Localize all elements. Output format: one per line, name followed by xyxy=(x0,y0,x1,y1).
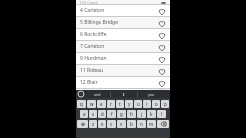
staticText: you xyxy=(148,92,155,97)
button[interactable]: l xyxy=(157,110,166,118)
staticText: 150 Capit xyxy=(79,0,98,5)
button[interactable]: Favourite 12 Blair xyxy=(157,79,166,87)
button[interactable]: d xyxy=(98,110,106,118)
button[interactable]: Favourite 5 Billings Bridge xyxy=(157,19,166,27)
button[interactable]: Shift xyxy=(77,120,88,128)
staticText: d xyxy=(101,111,104,117)
staticText: and xyxy=(94,92,101,97)
button[interactable]: 7 Carleton xyxy=(76,41,170,52)
staticText: y xyxy=(128,101,131,107)
staticText: k xyxy=(150,111,153,117)
staticText: f xyxy=(111,111,113,117)
staticText: c xyxy=(110,121,113,127)
button[interactable]: v xyxy=(117,120,126,128)
button[interactable]: 12 Blair xyxy=(76,77,170,88)
staticText: 9 Hurdman xyxy=(80,55,107,62)
button[interactable]: 4 Carleton xyxy=(76,5,170,16)
staticText: o xyxy=(155,101,158,107)
button[interactable]: p xyxy=(161,100,169,108)
staticText: w xyxy=(90,101,94,107)
staticText: m xyxy=(149,121,154,127)
staticText: u xyxy=(137,101,140,107)
button[interactable]: 6 Rockcliffe xyxy=(76,29,170,40)
staticText: g xyxy=(120,111,123,117)
staticText: x xyxy=(101,121,104,127)
button[interactable]: 11 Rideau xyxy=(76,65,170,76)
button[interactable]: x xyxy=(98,120,106,128)
button[interactable]: Delete xyxy=(157,120,169,128)
staticText: q xyxy=(80,101,83,107)
button[interactable]: j xyxy=(137,110,146,118)
button[interactable]: h xyxy=(127,110,136,118)
button[interactable]: n xyxy=(137,120,146,128)
staticText: r xyxy=(110,101,112,107)
staticText: a xyxy=(83,111,86,117)
button[interactable]: s xyxy=(89,110,97,118)
button[interactable]: q xyxy=(77,100,86,108)
button[interactable]: c xyxy=(107,120,116,128)
staticText: h xyxy=(130,111,133,117)
button[interactable]: 9 Hurdman xyxy=(76,53,170,64)
button[interactable]: 5 Billings Bridge xyxy=(76,17,170,28)
button[interactable]: 150 Capit xyxy=(76,0,170,5)
staticText: l xyxy=(161,111,163,117)
staticText: 7 Carleton xyxy=(80,43,105,50)
button[interactable]: i xyxy=(143,100,151,108)
staticText: 12 Blair xyxy=(80,79,98,86)
staticText: I xyxy=(123,92,125,97)
button[interactable]: k xyxy=(147,110,156,118)
staticText: p xyxy=(164,101,167,107)
staticText: n xyxy=(140,121,143,127)
button[interactable]: z xyxy=(89,120,97,128)
button[interactable]: y xyxy=(125,100,133,108)
button[interactable]: m xyxy=(147,120,156,128)
button[interactable]: b xyxy=(127,120,136,128)
staticText: z xyxy=(92,121,95,127)
staticText: 11 Rideau xyxy=(80,67,104,74)
staticText: 4 Carleton xyxy=(80,7,105,14)
staticText: j xyxy=(141,111,143,117)
button[interactable]: Favourite 11 Rideau xyxy=(157,67,166,75)
button[interactable]: 14 Carlingwood xyxy=(76,89,170,90)
staticText: i xyxy=(146,101,148,107)
button[interactable]: e xyxy=(97,100,106,108)
staticText: 5 Billings Bridge xyxy=(80,19,119,26)
staticText: e xyxy=(100,101,103,107)
button[interactable]: a xyxy=(80,110,88,118)
staticText: b xyxy=(130,121,133,127)
button[interactable]: Favourite 7 Carleton xyxy=(157,43,166,51)
button[interactable]: Favourite 4 Carleton xyxy=(157,7,166,15)
button[interactable]: I xyxy=(111,90,137,98)
button[interactable]: Favourite 9 Hurdman xyxy=(157,55,166,63)
button[interactable]: r xyxy=(107,100,115,108)
button[interactable]: u xyxy=(134,100,142,108)
staticText: t xyxy=(119,101,121,107)
staticText: s xyxy=(92,111,95,117)
button[interactable]: t xyxy=(116,100,124,108)
staticText: v xyxy=(120,121,123,127)
button[interactable]: Favourite 6 Rockcliffe xyxy=(157,31,166,39)
button[interactable]: and xyxy=(84,90,110,98)
button[interactable]: o xyxy=(152,100,160,108)
button[interactable]: you xyxy=(138,90,164,98)
button[interactable]: f xyxy=(107,110,116,118)
button[interactable]: Voice input xyxy=(78,91,84,97)
button[interactable]: g xyxy=(117,110,126,118)
staticText: 6 Rockcliffe xyxy=(80,31,107,38)
button[interactable]: Favourite 14 Carlingwood xyxy=(157,89,166,90)
button[interactable]: w xyxy=(87,100,96,108)
